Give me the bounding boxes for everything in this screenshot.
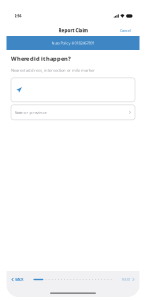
staticText: Where did it happen? xyxy=(11,54,71,62)
button[interactable] xyxy=(11,78,135,102)
staticText: State or province xyxy=(14,109,46,115)
button[interactable]: Cancel xyxy=(116,26,135,35)
staticText: Nearest address, intersection or mile ma… xyxy=(11,67,95,73)
button[interactable]: NEXT xyxy=(117,274,139,285)
button[interactable]: BACK xyxy=(6,274,28,285)
staticText: NEXT xyxy=(122,277,131,282)
staticText: Report Claim xyxy=(58,27,87,34)
staticText: 2:56 xyxy=(14,14,21,18)
button[interactable]: State or province xyxy=(11,105,135,120)
staticText: Auto Policy #0182467891 xyxy=(51,40,94,46)
staticText: BACK xyxy=(15,277,23,282)
staticText: Cancel xyxy=(120,28,131,33)
